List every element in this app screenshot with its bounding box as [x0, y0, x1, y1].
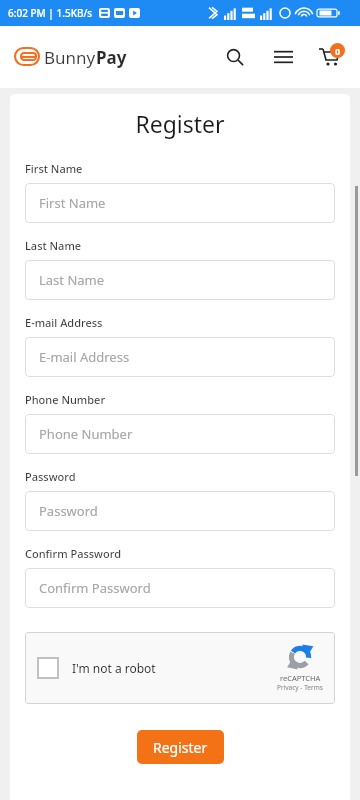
staticText: First Name [39, 194, 106, 212]
button[interactable]: E-mail Address [25, 337, 335, 377]
staticText: Password [39, 502, 98, 520]
staticText: Register [25, 108, 335, 139]
staticText: Bunny [44, 46, 96, 69]
staticText: Register [153, 738, 208, 757]
button[interactable]: I'm not a robot checkbox [37, 657, 59, 679]
staticText: reCAPTCHA [280, 673, 321, 683]
button[interactable]: Bunny [13, 45, 127, 69]
staticText: Confirm Password [39, 579, 151, 597]
button[interactable]: Register [137, 730, 224, 764]
button[interactable]: Cart, 0 items [312, 40, 346, 74]
staticText: Phone Number [25, 392, 106, 407]
staticText: I'm not a robot [72, 660, 156, 676]
staticText: Password [25, 469, 76, 484]
button[interactable]: Confirm Password [25, 568, 335, 608]
staticText: Last Name [39, 271, 105, 289]
staticText: Phone Number [39, 425, 133, 443]
staticText: E-mail Address [39, 348, 130, 366]
button[interactable]: First Name [25, 183, 335, 223]
button[interactable]: Phone Number [25, 414, 335, 454]
staticText: 0 [335, 45, 341, 57]
button[interactable]: Password [25, 491, 335, 531]
button[interactable]: Menu [266, 40, 300, 74]
staticText: Last Name [25, 238, 82, 253]
staticText: Pay [96, 46, 127, 69]
staticText: E-mail Address [25, 315, 103, 330]
staticText: Confirm Password [25, 546, 121, 561]
staticText: First Name [25, 161, 83, 176]
button[interactable]: Search [218, 40, 252, 74]
staticText: Privacy - Terms [277, 683, 323, 692]
staticText: 6:02 PM | 1.5KB/s [8, 6, 93, 20]
button[interactable]: Last Name [25, 260, 335, 300]
